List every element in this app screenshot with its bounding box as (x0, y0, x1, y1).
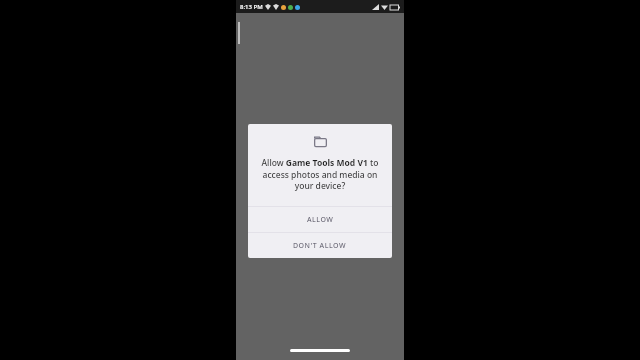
button[interactable]: DON'T ALLOW (248, 233, 392, 258)
button[interactable]: ALLOW (248, 207, 392, 232)
staticText: DON'T ALLOW (293, 241, 347, 251)
staticText: Allow Game Tools Mod V1 to access photos… (258, 157, 382, 192)
staticText: ALLOW (307, 215, 334, 225)
staticText: 8:13 PM (240, 3, 263, 11)
